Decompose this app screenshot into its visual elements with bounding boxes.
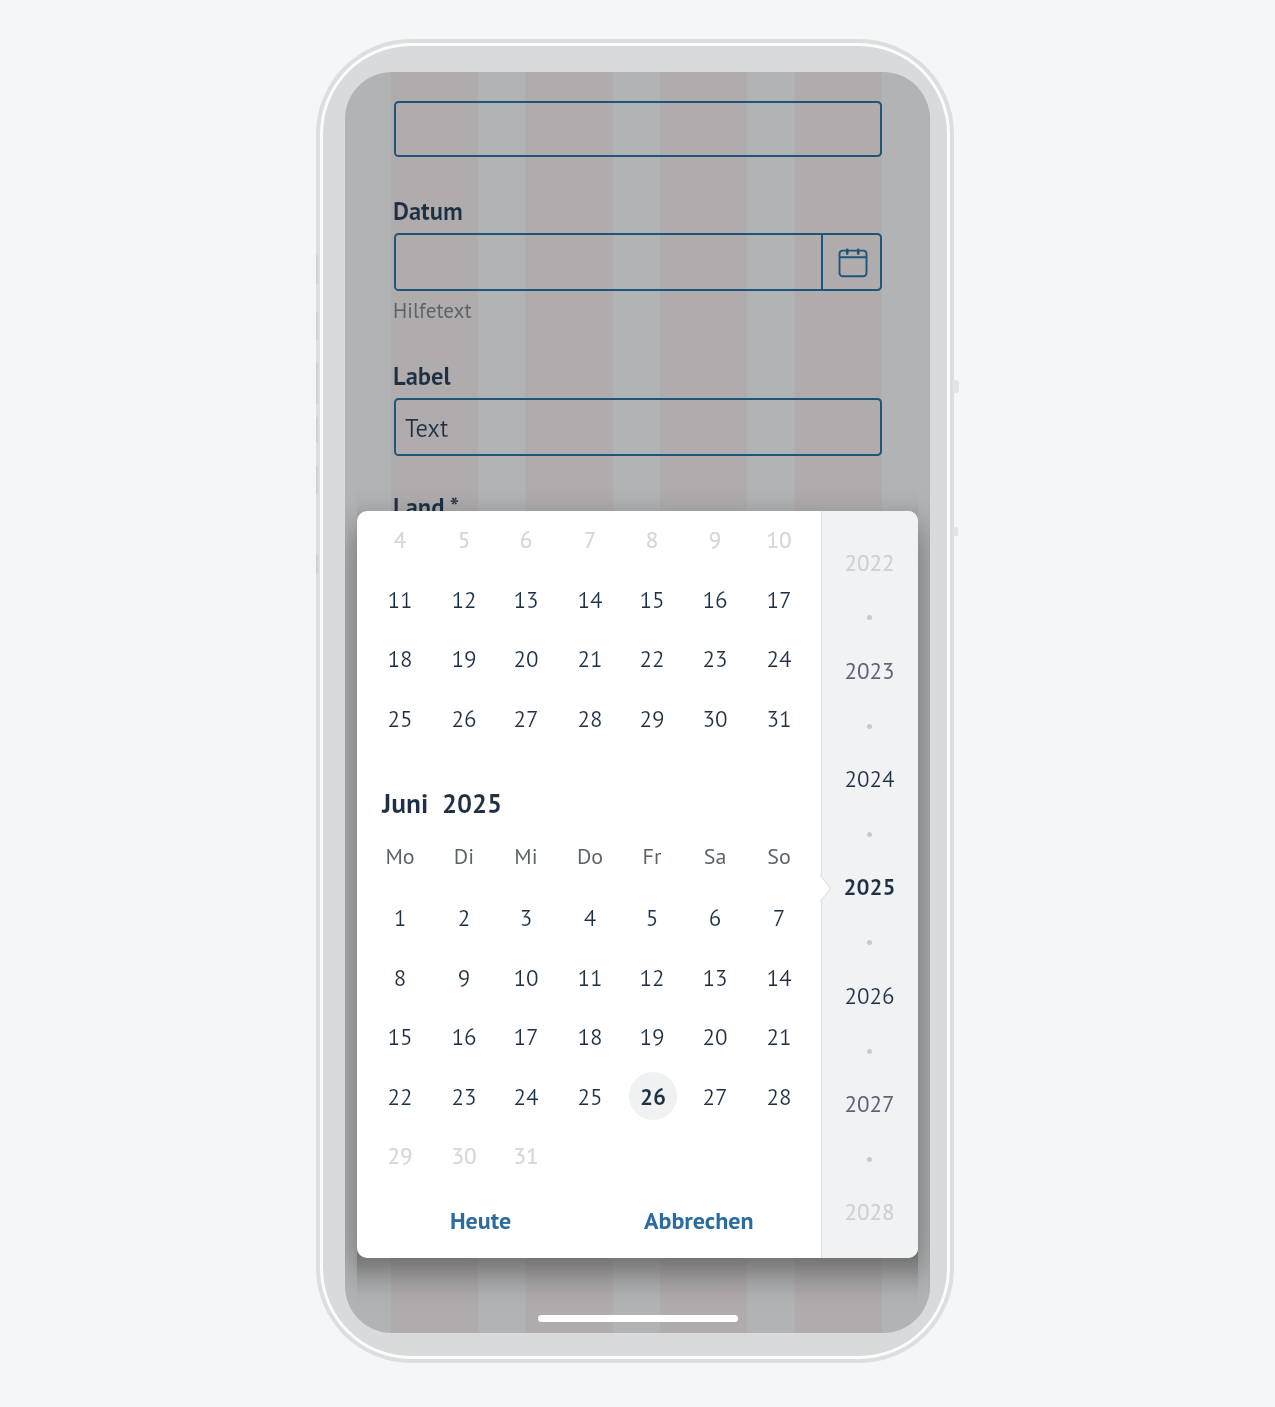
- button[interactable]: 31: [502, 1127, 550, 1175]
- staticText: 20: [691, 1022, 739, 1057]
- button[interactable]: Eingabefeld: [394, 101, 882, 157]
- button[interactable]: 25: [566, 1068, 614, 1116]
- staticText: 24: [755, 644, 803, 679]
- button[interactable]: 30: [691, 690, 739, 738]
- staticText: Fr: [622, 842, 682, 877]
- button[interactable]: 19: [440, 630, 488, 678]
- staticText: 26: [629, 1082, 677, 1117]
- button[interactable]: 16: [691, 571, 739, 619]
- button[interactable]: 24: [755, 630, 803, 678]
- staticText: 14: [755, 963, 803, 998]
- button[interactable]: 4: [566, 889, 614, 937]
- button[interactable]: Label Eingabefeld: [394, 398, 882, 456]
- button[interactable]: 11: [376, 571, 424, 619]
- staticText: 5: [440, 525, 488, 560]
- button[interactable]: 20: [502, 630, 550, 678]
- button[interactable]: 21: [755, 1008, 803, 1056]
- button[interactable]: 15: [376, 1008, 424, 1056]
- button[interactable]: 4: [376, 511, 424, 559]
- staticText: 9: [440, 963, 488, 998]
- button[interactable]: 7: [566, 511, 614, 559]
- button[interactable]: 2022: [821, 537, 918, 591]
- staticText: 21: [566, 644, 614, 679]
- staticText: Datum: [393, 195, 463, 227]
- button[interactable]: 10: [755, 511, 803, 559]
- button[interactable]: 21: [566, 630, 614, 678]
- button[interactable]: Abbrechen: [638, 1195, 762, 1239]
- button[interactable]: 26: [629, 1072, 677, 1120]
- button[interactable]: 11: [566, 949, 614, 997]
- button[interactable]: 28: [755, 1068, 803, 1116]
- staticText: 15: [376, 1022, 424, 1057]
- button[interactable]: 9: [440, 949, 488, 997]
- staticText: Label: [393, 360, 451, 392]
- button[interactable]: 28: [566, 690, 614, 738]
- button[interactable]: 2023: [821, 645, 918, 699]
- staticText: Sa: [685, 842, 745, 877]
- staticText: 20: [502, 644, 550, 679]
- staticText: So: [749, 842, 809, 877]
- button[interactable]: 18: [376, 630, 424, 678]
- button[interactable]: 3: [502, 889, 550, 937]
- staticText: 2025: [442, 786, 503, 820]
- staticText: 2028: [821, 1197, 918, 1234]
- button[interactable]: 14: [566, 571, 614, 619]
- staticText: 16: [691, 585, 739, 620]
- button[interactable]: 6: [691, 889, 739, 937]
- button[interactable]: Kalender öffnen: [823, 233, 882, 288]
- button[interactable]: 26: [440, 690, 488, 738]
- button[interactable]: 31: [755, 690, 803, 738]
- button[interactable]: 2025: [821, 861, 918, 915]
- staticText: 19: [440, 644, 488, 679]
- button[interactable]: 2028: [821, 1186, 918, 1240]
- button[interactable]: 14: [755, 949, 803, 997]
- staticText: 18: [566, 1022, 614, 1057]
- staticText: 11: [376, 585, 424, 620]
- staticText: 9: [691, 525, 739, 560]
- button[interactable]: 27: [502, 690, 550, 738]
- button[interactable]: 23: [691, 630, 739, 678]
- button[interactable]: 24: [502, 1068, 550, 1116]
- button[interactable]: 29: [628, 690, 676, 738]
- button[interactable]: 12: [628, 949, 676, 997]
- button[interactable]: 5: [628, 889, 676, 937]
- button[interactable]: 23: [440, 1068, 488, 1116]
- staticText: 2024: [821, 764, 918, 801]
- button[interactable]: 20: [691, 1008, 739, 1056]
- button[interactable]: 25: [376, 690, 424, 738]
- button[interactable]: 7: [755, 889, 803, 937]
- button[interactable]: 19: [628, 1008, 676, 1056]
- staticText: 24: [502, 1082, 550, 1117]
- staticText: 25: [376, 704, 424, 739]
- button[interactable]: 18: [566, 1008, 614, 1056]
- button[interactable]: 22: [628, 630, 676, 678]
- staticText: Text: [405, 412, 449, 444]
- button[interactable]: Heute: [444, 1195, 524, 1239]
- button[interactable]: 16: [440, 1008, 488, 1056]
- button[interactable]: 2024: [821, 753, 918, 807]
- button[interactable]: 6: [502, 511, 550, 559]
- button[interactable]: 27: [691, 1068, 739, 1116]
- button[interactable]: 12: [440, 571, 488, 619]
- button[interactable]: 9: [691, 511, 739, 559]
- button[interactable]: 17: [755, 571, 803, 619]
- button[interactable]: 2: [440, 889, 488, 937]
- button[interactable]: 10: [502, 949, 550, 997]
- button[interactable]: 17: [502, 1008, 550, 1056]
- button[interactable]: 2026: [821, 970, 918, 1024]
- button[interactable]: 30: [440, 1127, 488, 1175]
- button[interactable]: 1: [376, 889, 424, 937]
- button[interactable]: 15: [628, 571, 676, 619]
- button[interactable]: 13: [691, 949, 739, 997]
- button[interactable]: Datum Eingabefeld: [394, 233, 882, 291]
- button[interactable]: 8: [376, 949, 424, 997]
- button[interactable]: 13: [502, 571, 550, 619]
- button[interactable]: 5: [440, 511, 488, 559]
- button[interactable]: 22: [376, 1068, 424, 1116]
- staticText: 4: [376, 525, 424, 560]
- staticText: 10: [755, 525, 803, 560]
- staticText: 16: [440, 1022, 488, 1057]
- button[interactable]: 2027: [821, 1078, 918, 1132]
- button[interactable]: 29: [376, 1127, 424, 1175]
- button[interactable]: 8: [628, 511, 676, 559]
